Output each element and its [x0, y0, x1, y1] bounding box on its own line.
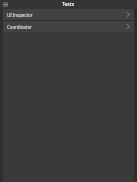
staticText: Tests: [62, 1, 75, 8]
button[interactable]: Menu: [2, 1, 9, 8]
staticText: UI Inspector: [7, 12, 126, 18]
staticText: Coordinator: [7, 24, 126, 30]
button[interactable]: UI Inspector: [3, 9, 134, 20]
button[interactable]: Coordinator: [3, 21, 134, 32]
